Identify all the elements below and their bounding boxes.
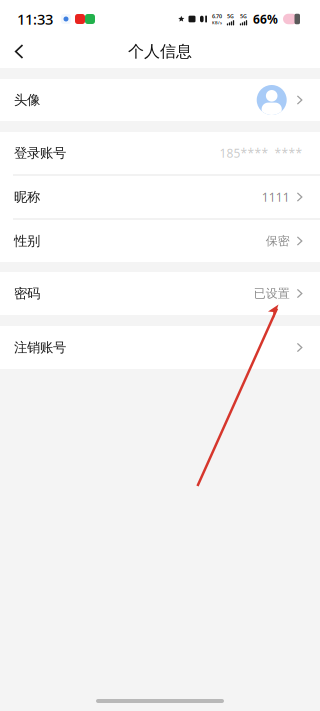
- staticText: 个人信息: [128, 42, 192, 61]
- button[interactable]: 注销账号: [0, 326, 320, 369]
- staticText: 1111: [262, 189, 290, 205]
- staticText: 昵称: [14, 189, 40, 205]
- staticText: 已设置: [254, 286, 290, 301]
- staticText: 5G: [240, 13, 247, 20]
- button[interactable]: 密码: [0, 272, 320, 315]
- staticText: 6.70: [212, 13, 222, 20]
- staticText: 登录账号: [14, 145, 66, 161]
- staticText: 11:33: [17, 9, 53, 29]
- staticText: 注销账号: [14, 339, 66, 356]
- button[interactable]: 头像: [0, 79, 320, 121]
- staticText: 保密: [266, 234, 290, 248]
- button[interactable]: 登录账号: [0, 132, 320, 174]
- staticText: KB/s: [212, 20, 222, 25]
- staticText: 头像: [14, 92, 40, 108]
- button[interactable]: 昵称: [0, 176, 320, 218]
- staticText: 66%: [253, 11, 278, 27]
- staticText: 性别: [14, 233, 40, 249]
- button[interactable]: 性别: [0, 220, 320, 262]
- staticText: 5G: [227, 13, 234, 20]
- button[interactable]: Back: [0, 39, 38, 68]
- staticText: 密码: [14, 285, 40, 302]
- staticText: 185**** ****: [219, 145, 302, 161]
